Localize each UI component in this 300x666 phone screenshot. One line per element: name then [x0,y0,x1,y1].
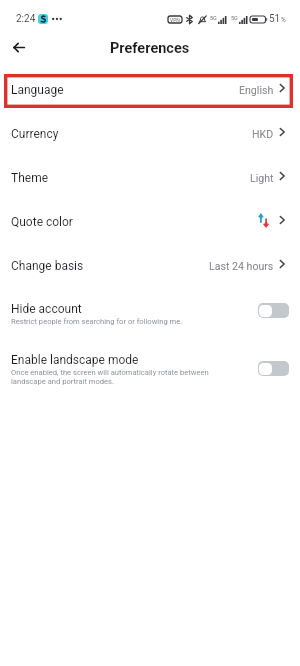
staticText: VPN [170,17,180,23]
button[interactable]: Toggle [258,303,289,318]
button[interactable]: Hide account [0,302,300,326]
button[interactable]: Quote color [0,200,300,244]
staticText: HKD [252,128,274,140]
staticText: 5G [210,15,217,21]
staticText: 51 [269,13,281,25]
staticText: Change basis [11,259,84,273]
staticText: Once enabled, the screen will automatica… [11,368,209,377]
staticText: English [239,84,274,96]
button[interactable]: Currency [0,112,300,156]
staticText: Last 24 hours [209,260,274,272]
staticText: Theme [11,171,49,185]
button[interactable]: Change basis [0,244,300,288]
staticText: Restrict people from searching for or fo… [11,317,183,326]
staticText: 2:24 [16,13,36,25]
staticText: Hide account [11,302,82,316]
staticText: % [281,16,286,24]
staticText: Preferences [110,40,190,57]
staticText: 5G [231,15,238,21]
button[interactable]: Enable landscape mode [0,353,300,386]
button[interactable]: Toggle [258,361,289,376]
staticText: Light [250,172,274,184]
button[interactable]: Language [0,68,300,112]
staticText: Currency [11,127,59,141]
staticText: landscape and portrait modes. [11,377,114,386]
staticText: Language [11,83,64,97]
staticText: Enable landscape mode [11,353,139,367]
staticText: Quote color [11,215,73,229]
button[interactable]: Theme [0,156,300,200]
button[interactable]: Back [3,34,33,64]
